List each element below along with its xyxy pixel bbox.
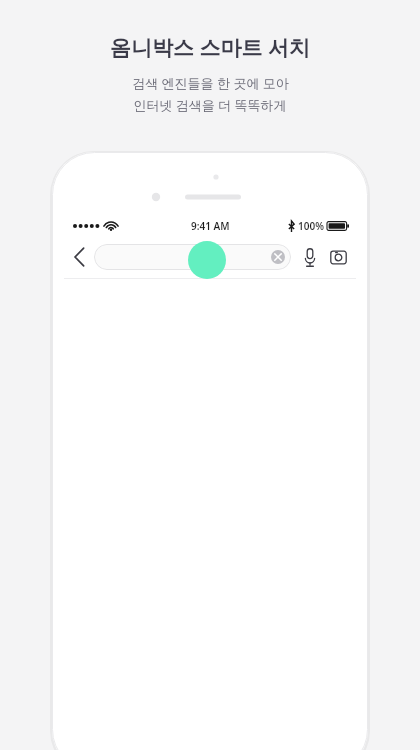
button[interactable]: Back [64, 236, 94, 278]
staticText: 9:41 AM [191, 219, 230, 233]
button[interactable]: Search by image [326, 243, 350, 271]
button[interactable]: Voice search [299, 243, 321, 271]
button[interactable]: Clear [271, 250, 285, 264]
staticText: 인터넷 검색을 더 똑똑하게 [133, 96, 287, 114]
staticText: 옴니박스 스마트 서치 [110, 33, 310, 62]
staticText: 100% [298, 219, 324, 233]
staticText: 검색 엔진들을 한 곳에 모아 [132, 74, 289, 92]
button[interactable]: Clear [94, 244, 291, 270]
